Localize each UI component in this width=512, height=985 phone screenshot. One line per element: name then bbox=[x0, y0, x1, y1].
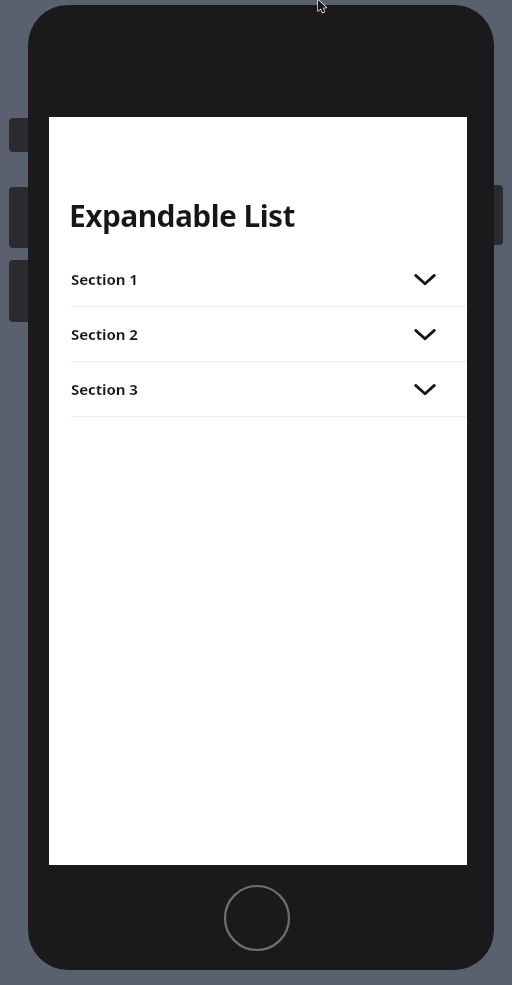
button[interactable]: Section 2 bbox=[49, 307, 467, 361]
other: Expand Section 3 bbox=[412, 376, 438, 402]
button[interactable]: Home bbox=[223, 884, 291, 952]
button[interactable]: Section 1 bbox=[49, 252, 467, 306]
other: Expand Section 1 bbox=[412, 266, 438, 292]
button[interactable]: Section 3 bbox=[49, 362, 467, 416]
staticText: Expandable List bbox=[69, 195, 295, 236]
other: Expand Section 2 bbox=[412, 321, 438, 347]
staticText: Section 2 bbox=[71, 324, 138, 344]
staticText: Section 1 bbox=[71, 269, 138, 289]
staticText: Section 3 bbox=[71, 379, 138, 399]
